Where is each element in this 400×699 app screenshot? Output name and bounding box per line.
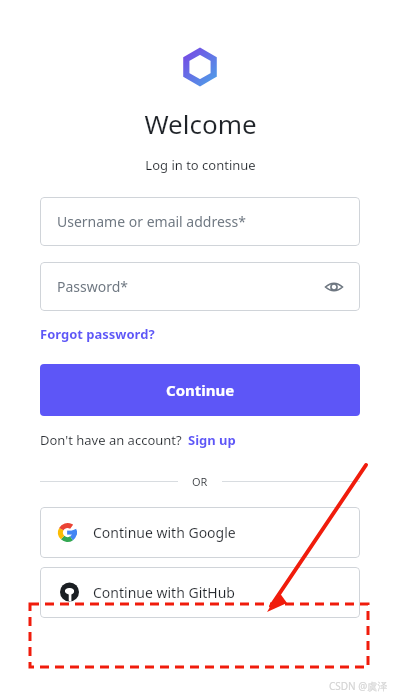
staticText: Sign up	[188, 431, 236, 449]
button[interactable]: Forgot password?	[40, 321, 155, 347]
staticText: Continue with Google	[93, 523, 236, 542]
button[interactable]: Continue	[40, 364, 360, 416]
button[interactable]: Sign up	[188, 428, 236, 452]
button[interactable]: Continue with GitHub	[40, 567, 360, 618]
staticText: Continue with GitHub	[93, 583, 235, 602]
button[interactable]: Username or email address*	[40, 197, 360, 246]
staticText: Continue	[166, 380, 235, 400]
staticText: CSDN @虞泽	[329, 679, 388, 693]
staticText: Log in to continue	[145, 156, 256, 174]
staticText: Username or email address*	[57, 212, 246, 231]
staticText: Password*	[57, 277, 129, 296]
staticText: Don't have an account?	[40, 431, 182, 449]
button[interactable]: Continue with Google	[40, 507, 360, 558]
staticText: Welcome	[144, 106, 257, 141]
button[interactable]: Password*	[40, 262, 360, 311]
staticText: OR	[192, 474, 208, 489]
button[interactable]: Show password	[322, 275, 346, 299]
staticText: Forgot password?	[40, 325, 155, 343]
